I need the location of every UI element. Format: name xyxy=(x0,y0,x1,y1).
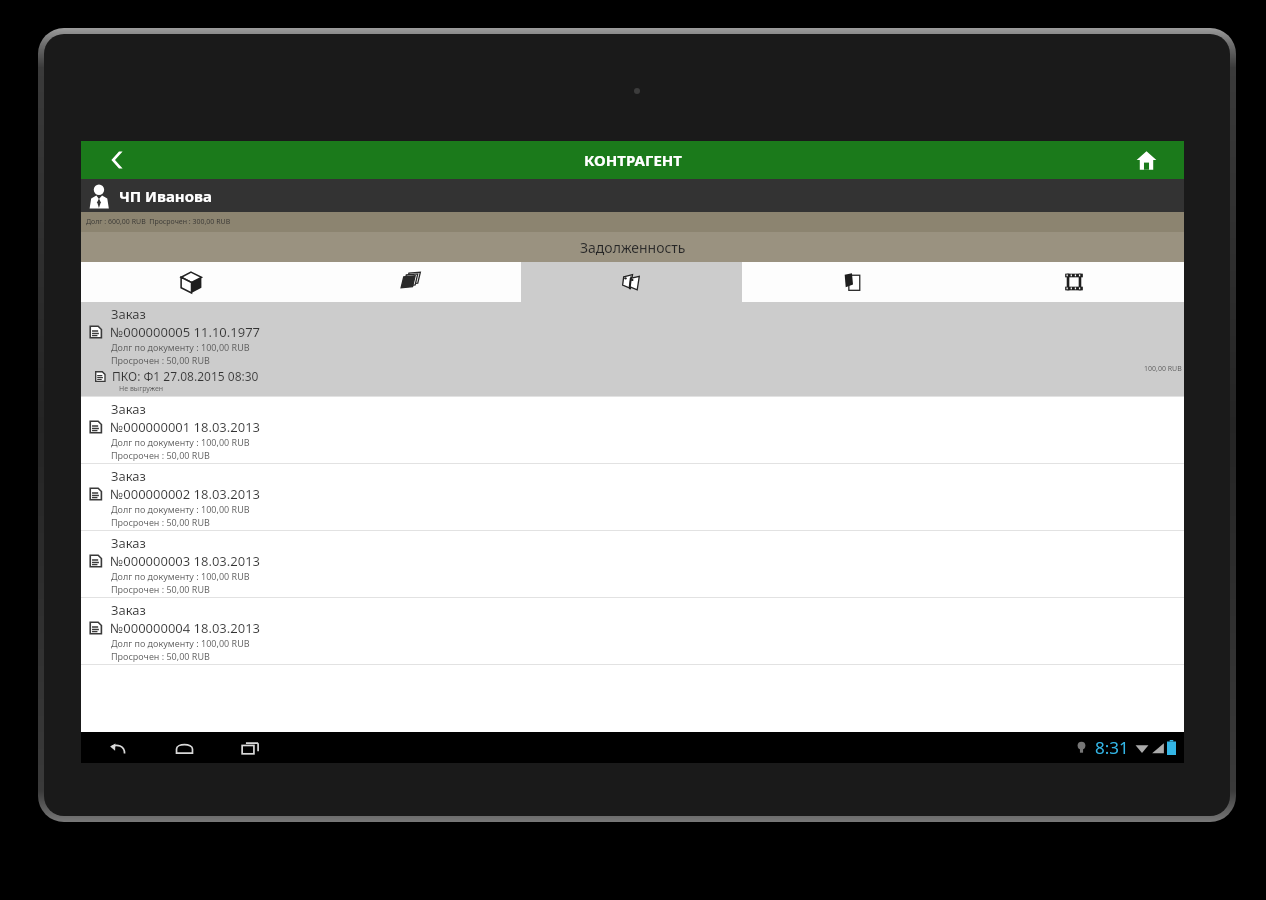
button[interactable]: Tab 3 xyxy=(521,262,742,302)
staticText: Долг по документу : 100,00 RUB xyxy=(111,436,250,448)
staticText: №000000004 18.03.2013 xyxy=(110,619,261,637)
staticText: КОНТРАГЕНТ xyxy=(584,150,682,170)
staticText: Просрочен : 50,00 RUB xyxy=(111,583,210,595)
staticText: Просрочен : 50,00 RUB xyxy=(111,650,210,662)
staticText: №000000003 18.03.2013 xyxy=(110,552,261,570)
staticText: 100,00 RUB xyxy=(1144,364,1182,374)
button[interactable]: Tab 2 xyxy=(301,262,521,302)
button[interactable]: Заказ xyxy=(81,531,1184,598)
staticText: ЧП Иванова xyxy=(119,186,212,206)
staticText: №000000005 11.10.1977 xyxy=(110,323,261,341)
button[interactable]: Back xyxy=(81,141,157,179)
button[interactable]: Home xyxy=(169,733,199,763)
staticText: Задолженность xyxy=(580,238,686,257)
button[interactable]: Заказ xyxy=(81,464,1184,531)
staticText: ПКО: Ф1 27.08.2015 08:30 xyxy=(112,368,259,384)
button[interactable]: ЧП Иванова xyxy=(81,179,1184,212)
staticText: Долг по документу : 100,00 RUB xyxy=(111,637,250,649)
staticText: Долг по документу : 100,00 RUB xyxy=(111,570,250,582)
button[interactable]: Tab 5 xyxy=(963,262,1184,302)
staticText: Заказ xyxy=(111,305,146,323)
button[interactable]: Recents xyxy=(235,733,265,763)
button[interactable]: Заказ xyxy=(81,397,1184,464)
button[interactable]: Home xyxy=(1108,141,1184,179)
staticText: Долг по документу : 100,00 RUB xyxy=(111,503,250,515)
button[interactable]: Tab 1 xyxy=(81,262,301,302)
staticText: Заказ xyxy=(111,601,146,619)
staticText: №000000002 18.03.2013 xyxy=(110,485,261,503)
staticText: Долг : 600,00 RUB Просрочен : 300,00 RUB xyxy=(86,217,231,227)
button[interactable]: Заказ xyxy=(81,302,1184,397)
staticText: №000000001 18.03.2013 xyxy=(110,418,261,436)
staticText: Заказ xyxy=(111,400,146,418)
staticText: Просрочен : 50,00 RUB xyxy=(111,516,210,528)
button[interactable]: Заказ xyxy=(81,598,1184,665)
staticText: Долг по документу : 100,00 RUB xyxy=(111,341,250,353)
staticText: Просрочен : 50,00 RUB xyxy=(111,449,210,461)
button[interactable]: Tab 4 xyxy=(742,262,963,302)
button[interactable]: Back xyxy=(103,733,133,763)
staticText: Заказ xyxy=(111,467,146,485)
staticText: Просрочен : 50,00 RUB xyxy=(111,354,210,366)
staticText: 8:31 xyxy=(1095,736,1129,759)
staticText: Не выгружен xyxy=(119,384,164,394)
staticText: Заказ xyxy=(111,534,146,552)
